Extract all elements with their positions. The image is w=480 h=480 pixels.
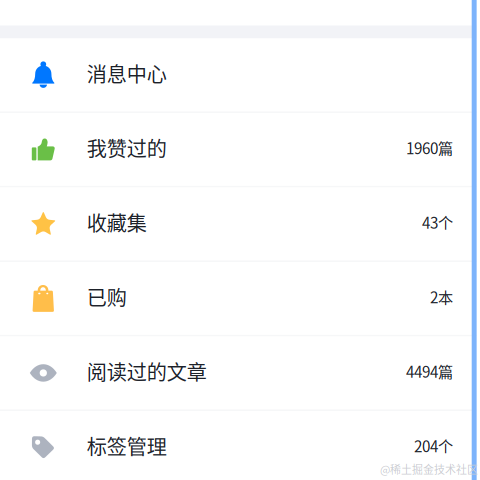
button[interactable]: 消息中心 [0, 38, 480, 111]
button[interactable]: 我赞过的 [0, 113, 480, 186]
staticText: @稀土掘金技术社区 [380, 461, 478, 477]
staticText: 阅读过的文章 [87, 357, 207, 386]
staticText: 标签管理 [87, 431, 167, 460]
staticText: 43个 [422, 211, 453, 233]
button[interactable]: 已购 [0, 262, 480, 335]
button[interactable]: 阅读过的文章 [0, 336, 480, 409]
staticText: 消息中心 [87, 59, 167, 88]
staticText: 收藏集 [87, 208, 147, 237]
staticText: 已购 [87, 282, 127, 311]
staticText: 204个 [414, 435, 453, 457]
staticText: 4494篇 [406, 360, 453, 382]
staticText: 1960篇 [406, 137, 453, 159]
button[interactable]: 标签管理 [0, 411, 480, 480]
staticText: 我赞过的 [87, 133, 167, 162]
staticText: 2本 [430, 286, 453, 308]
button[interactable]: 收藏集 [0, 187, 480, 260]
